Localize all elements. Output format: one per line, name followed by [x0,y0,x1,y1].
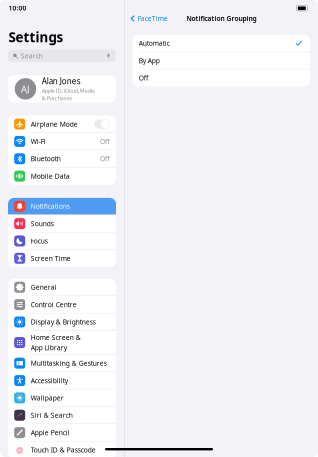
staticText: Mobile Data [31,172,70,181]
staticText: Notifications [31,202,70,211]
staticText: Alan Jones [42,76,81,86]
staticText: Off [139,73,149,82]
staticText: Apple Pencil [31,428,70,437]
button[interactable]: Focus [8,233,116,249]
button[interactable]: Sounds [8,215,116,232]
staticText: General [31,283,57,292]
staticText: Sounds [31,219,54,228]
staticText: & Purchases [42,95,73,102]
staticText: Wi-Fi [31,137,46,146]
button[interactable]: Touch ID & Passcode [8,442,116,457]
staticText: Focus [31,236,48,245]
staticText: Notification Grouping [186,14,256,23]
staticText: Display & Brightness [31,317,96,326]
button[interactable]: AJ [8,75,116,102]
staticText: App Library [31,343,67,352]
button[interactable]: Accessibility [8,372,116,389]
staticText: Apple ID, iCloud, Media [42,87,95,94]
staticText: Touch ID & Passcode [31,445,96,454]
staticText: Screen Time [31,254,71,263]
button[interactable]: Apple Pencil [8,424,116,441]
staticText: Automatic [139,39,170,48]
button[interactable]: Notifications [8,198,116,215]
button[interactable]: Wallpaper [8,389,116,406]
button[interactable]: Display & Brightness [8,314,116,330]
button[interactable]: General [8,279,116,296]
button[interactable]: Bluetooth [8,150,116,167]
button[interactable]: Screen Time [8,250,116,267]
button[interactable]: Automatic [133,35,310,52]
button[interactable]: Control Centre [8,296,116,313]
button[interactable]: Off [133,70,310,86]
staticText: Airplane Mode [31,120,78,128]
staticText: Accessibility [31,376,68,385]
staticText: Off [100,154,110,163]
button[interactable]: Home Screen & [8,331,116,354]
staticText: Wallpaper [31,393,64,402]
staticText: Home Screen & [31,333,81,342]
staticText: Settings [8,28,63,46]
button[interactable]: Search [8,49,116,62]
staticText: Bluetooth [31,154,61,163]
staticText: FaceTime [138,14,168,23]
button[interactable]: Wi-Fi [8,133,116,150]
staticText: Control Centre [31,300,77,309]
button[interactable]: Siri & Search [8,407,116,424]
button[interactable]: Airplane Mode [8,116,116,132]
staticText: By App [139,56,160,65]
button[interactable]: FaceTime [129,14,175,23]
button[interactable]: Mobile Data [8,168,116,185]
button[interactable]: By App [133,52,310,69]
staticText: Multitasking & Gestures [31,359,107,368]
staticText: Siri & Search [31,411,73,420]
staticText: AJ [21,83,30,95]
staticText: Search [21,51,43,60]
staticText: 10:00 [8,4,26,12]
staticText: Off [100,137,110,146]
button[interactable]: Multitasking & Gestures [8,355,116,372]
